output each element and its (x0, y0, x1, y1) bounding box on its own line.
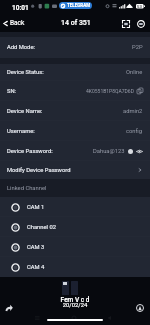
staticText: Device Password: (7, 148, 53, 155)
other: Copy serial number (137, 88, 143, 94)
button[interactable]: Add Mode: (0, 37, 150, 58)
button[interactable]: Account (133, 301, 146, 314)
staticText: Channel 02 (27, 224, 56, 231)
staticText: config (126, 128, 143, 135)
staticText: Device Status: (7, 69, 44, 76)
staticText: admin2 (123, 108, 143, 115)
staticText: Modify Device Password (7, 167, 71, 174)
staticText: CAM 4 (27, 264, 45, 271)
staticText: CAM 1 (27, 204, 45, 211)
staticText: 53 (137, 4, 142, 9)
staticText: Back (10, 19, 25, 27)
button[interactable]: Device Password: (0, 141, 150, 161)
button[interactable]: Device Status: (0, 64, 150, 81)
button[interactable]: Modify Device Password (0, 161, 150, 179)
button[interactable]: Share (2, 301, 15, 314)
button[interactable]: CAM 3 (0, 237, 150, 257)
staticText: 4K0551B1P8QA7D6D (86, 88, 134, 94)
staticText: 14 of 351 (61, 19, 91, 27)
staticText: SN: (7, 88, 16, 95)
staticText: CAM 3 (27, 244, 45, 251)
staticText: Dahua@123 (93, 148, 125, 155)
staticText: P2P (132, 44, 143, 51)
staticText: TELEGRAM (67, 3, 91, 8)
button[interactable]: Device Name: (0, 101, 150, 121)
staticText: Add Mode: (7, 44, 35, 51)
button[interactable]: Username: (0, 121, 150, 141)
other: Show password (136, 148, 143, 155)
button[interactable]: Back (0, 16, 30, 30)
button[interactable]: SN: (0, 81, 150, 101)
button[interactable]: More (134, 17, 147, 30)
staticText: Online (126, 69, 143, 76)
button[interactable]: CAM 4 (0, 257, 150, 277)
staticText: Username: (7, 128, 35, 135)
button[interactable]: Scan (119, 17, 132, 30)
staticText: Linked Channel (7, 185, 47, 192)
staticText: 10:01 (12, 4, 29, 12)
button[interactable]: Channel 02 (0, 217, 150, 237)
other: Copy password (128, 149, 133, 154)
button[interactable]: CAM 1 (0, 197, 150, 217)
staticText: Fem V c d (0, 296, 150, 304)
staticText: Device Name: (7, 108, 43, 115)
staticText: 20/02/24 (0, 302, 150, 309)
